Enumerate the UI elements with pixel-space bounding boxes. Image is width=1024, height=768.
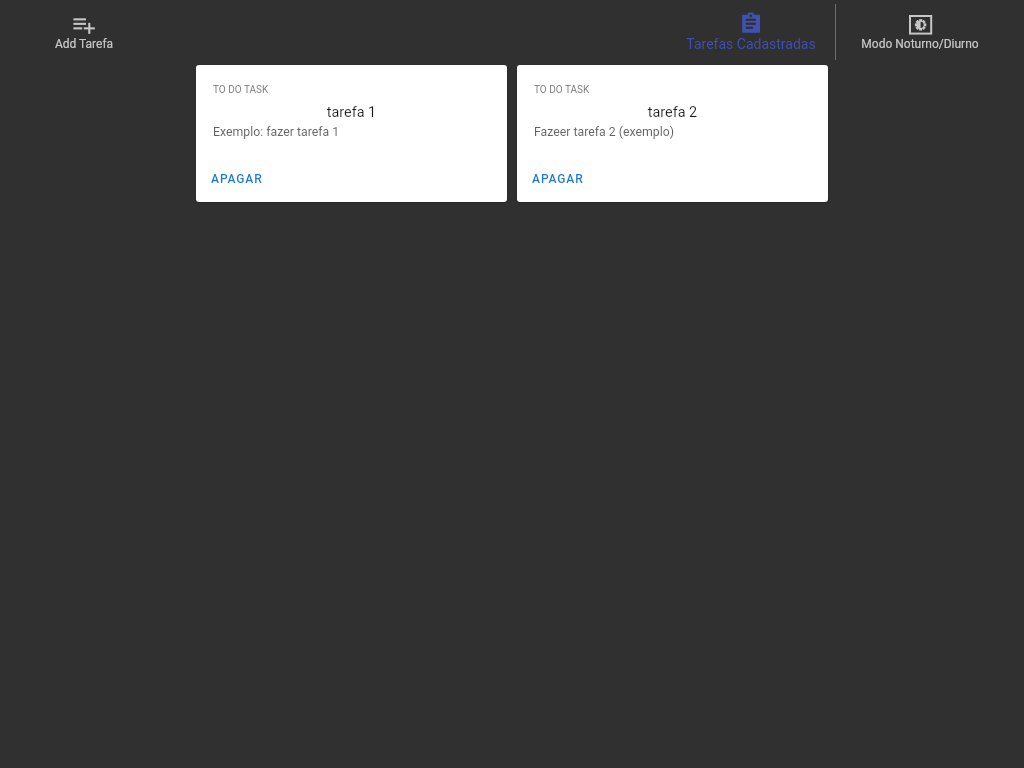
staticText: Add Tarefa (4, 37, 164, 51)
staticText: Tarefas Cadastradas (669, 36, 833, 52)
button[interactable]: TO DO TASK (517, 65, 828, 202)
button[interactable]: APAGAR (204, 166, 270, 192)
button[interactable]: Add Tarefa (4, 4, 164, 56)
staticText: tarefa 1 (196, 104, 507, 121)
staticText: TO DO TASK (534, 84, 590, 96)
staticText: Exemplo: fazer tarefa 1 (213, 125, 340, 139)
button[interactable]: Tarefas Cadastradas (669, 4, 833, 56)
staticText: Modo Noturno/Diurno (840, 37, 1000, 51)
button[interactable]: APAGAR (525, 166, 591, 192)
staticText: tarefa 2 (517, 104, 828, 121)
staticText: APAGAR (532, 172, 584, 186)
staticText: APAGAR (211, 172, 263, 186)
staticText: Fazeer tarefa 2 (exemplo) (534, 125, 675, 139)
button[interactable]: TO DO TASK (196, 65, 507, 202)
button[interactable]: Modo Noturno/Diurno (840, 4, 1000, 56)
staticText: TO DO TASK (213, 84, 269, 96)
